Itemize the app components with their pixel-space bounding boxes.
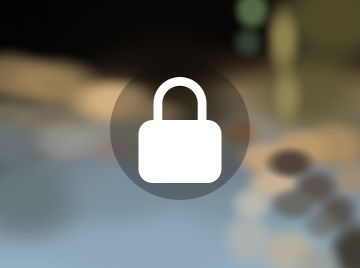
button[interactable]: Locked	[110, 60, 250, 200]
